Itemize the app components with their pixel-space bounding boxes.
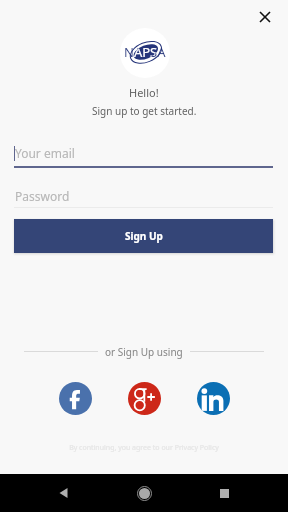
staticText: or Sign Up using xyxy=(105,345,183,359)
staticText: Your email xyxy=(15,145,75,161)
button[interactable]: Home xyxy=(128,477,160,509)
staticText: Sign Up xyxy=(125,229,163,243)
button[interactable]: Sign up with Google Plus xyxy=(128,382,161,415)
staticText: Hello! xyxy=(129,85,159,100)
button[interactable]: Sign up with LinkedIn xyxy=(197,382,230,415)
button[interactable]: Close xyxy=(249,1,281,33)
staticText: Sign up to get started. xyxy=(92,104,197,118)
button[interactable]: Back xyxy=(48,477,80,509)
staticText: Password xyxy=(15,188,70,204)
button[interactable]: Recent apps xyxy=(208,477,240,509)
staticText: By continuing, you agree to our Privacy … xyxy=(69,443,219,453)
button[interactable]: Sign Up xyxy=(14,219,273,253)
button[interactable]: Sign up with Facebook xyxy=(59,382,92,415)
